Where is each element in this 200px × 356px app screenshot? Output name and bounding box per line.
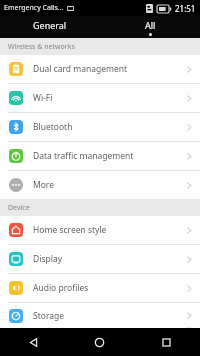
- staticText: Display: [33, 253, 187, 265]
- button[interactable]: More: [0, 171, 200, 199]
- button[interactable]: Dual card management: [0, 55, 200, 83]
- button[interactable]: Display: [0, 245, 200, 273]
- staticText: Storage: [33, 310, 187, 322]
- button[interactable]: All: [100, 16, 200, 38]
- staticText: 21:51: [175, 3, 196, 14]
- staticText: Bluetooth: [33, 121, 187, 133]
- staticText: Wireless & networks: [8, 42, 75, 52]
- button[interactable]: Storage: [0, 303, 200, 328]
- staticText: Home screen style: [33, 224, 187, 236]
- button[interactable]: Back: [0, 328, 66, 356]
- button[interactable]: Home: [66, 328, 133, 356]
- button[interactable]: General: [0, 16, 100, 38]
- button[interactable]: Audio profiles: [0, 274, 200, 302]
- button[interactable]: Bluetooth: [0, 113, 200, 141]
- staticText: All: [145, 19, 156, 31]
- staticText: More: [33, 179, 187, 191]
- staticText: Audio profiles: [33, 282, 187, 294]
- staticText: Data traffic management: [33, 150, 187, 162]
- staticText: Wi-Fi: [33, 92, 187, 104]
- button[interactable]: Data traffic management: [0, 142, 200, 170]
- staticText: Emergency Calls...: [4, 3, 64, 13]
- button[interactable]: Recent apps: [133, 328, 200, 356]
- button[interactable]: Wi-Fi: [0, 84, 200, 112]
- staticText: Device: [8, 203, 30, 213]
- staticText: Dual card management: [33, 63, 187, 75]
- staticText: General: [33, 19, 67, 31]
- button[interactable]: Home screen style: [0, 216, 200, 244]
